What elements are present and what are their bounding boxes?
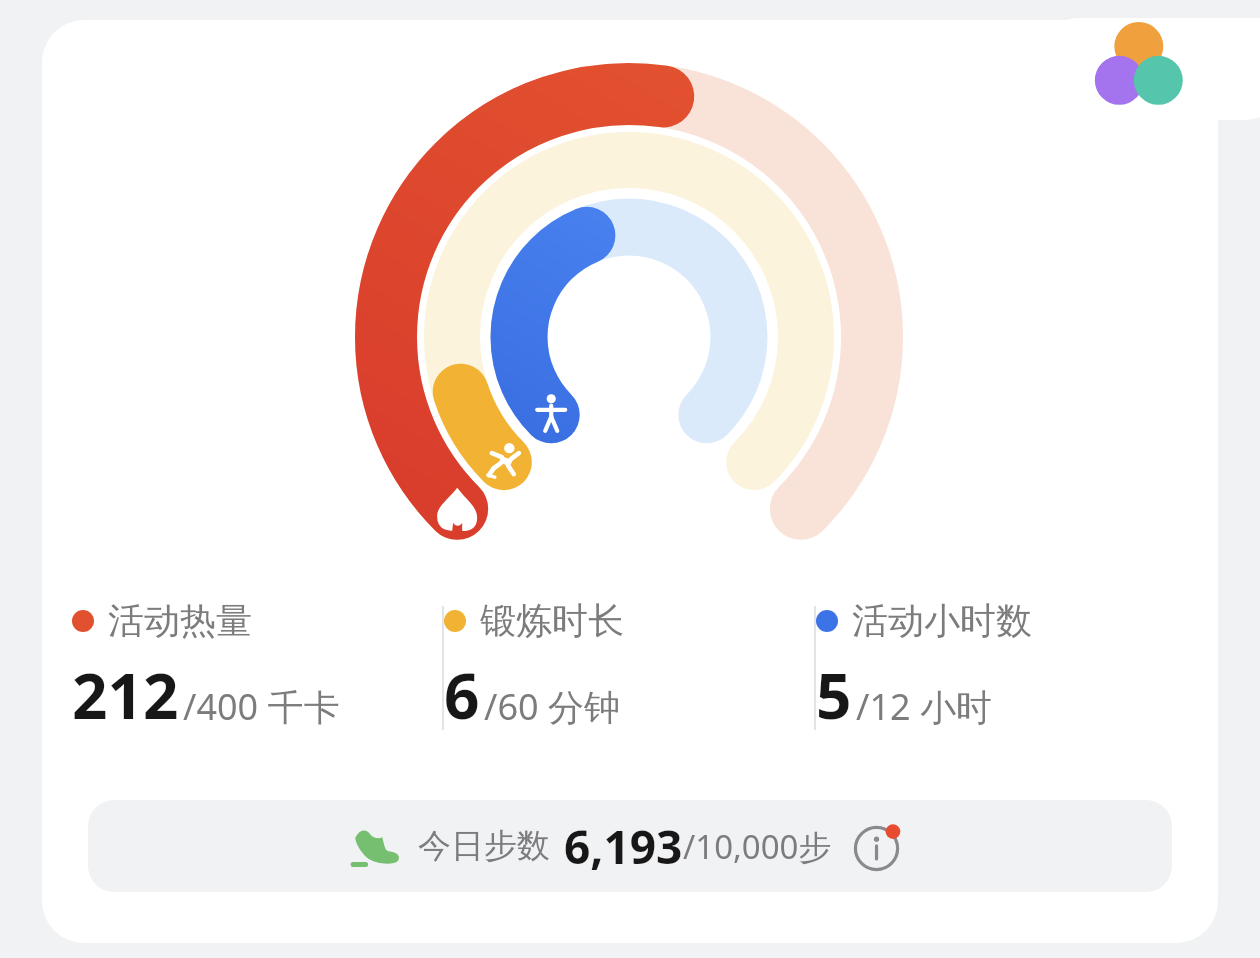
staticText: 6 bbox=[444, 653, 480, 737]
button[interactable]: 活动小时数 bbox=[816, 598, 1188, 766]
button[interactable]: 信息 bbox=[848, 815, 910, 877]
staticText: 6,193 bbox=[564, 815, 683, 878]
staticText: 活动小时数 bbox=[852, 598, 1032, 643]
button[interactable]: 今日步数 bbox=[88, 800, 1172, 892]
staticText: 今日步数 bbox=[418, 825, 550, 867]
staticText: /10,000步 bbox=[683, 824, 832, 869]
staticText: 活动热量 bbox=[108, 598, 252, 643]
button[interactable] bbox=[42, 20, 1218, 943]
staticText: /12 小时 bbox=[856, 682, 992, 731]
button[interactable]: 活动热量 bbox=[72, 598, 442, 766]
staticText: 212 bbox=[72, 653, 179, 737]
staticText: 锻炼时长 bbox=[480, 598, 624, 643]
staticText: /400 千卡 bbox=[183, 682, 340, 731]
button[interactable]: 活动记录 bbox=[1046, 18, 1260, 120]
button[interactable]: 锻炼时长 bbox=[444, 598, 814, 766]
staticText: 5 bbox=[816, 653, 852, 737]
staticText: /60 分钟 bbox=[484, 682, 620, 731]
